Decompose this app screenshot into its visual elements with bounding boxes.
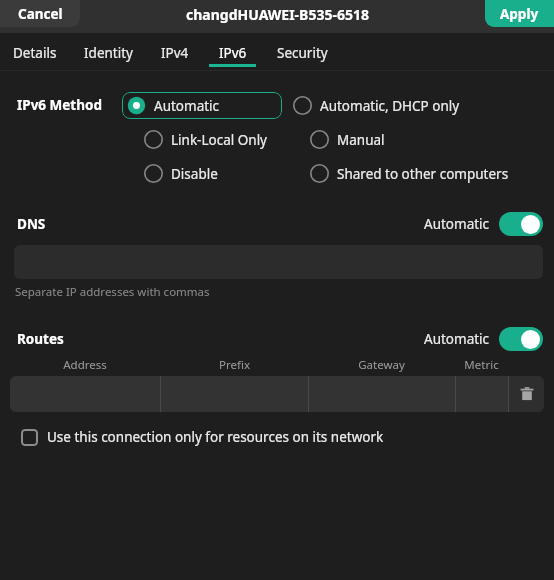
staticText: DNS [17, 215, 46, 233]
staticText: changdHUAWEI-B535-6518 [186, 5, 369, 24]
button[interactable]: Automatic [424, 327, 543, 351]
staticText: Metric [464, 357, 499, 373]
staticText: IPv6 Method [17, 96, 122, 114]
staticText: Manual [337, 131, 385, 149]
button[interactable]: Delete route [509, 376, 544, 412]
button[interactable]: Link-Local Only [139, 126, 299, 153]
button[interactable]: Automatic toggle, on [499, 212, 543, 236]
staticText: IPv6 [219, 44, 247, 62]
staticText: Apply [500, 5, 539, 23]
staticText: Cancel [18, 5, 63, 23]
staticText: Automatic [424, 330, 490, 348]
button[interactable]: Automatic toggle, on [499, 327, 543, 351]
staticText: Link-Local Only [171, 131, 267, 149]
button[interactable]: Manual [310, 126, 385, 153]
button[interactable]: Automatic [122, 92, 282, 119]
button[interactable]: Apply [485, 0, 554, 27]
button[interactable]: Automatic, DHCP only [293, 92, 460, 119]
button[interactable]: IPv4 [153, 33, 197, 71]
staticText: Security [277, 44, 328, 62]
staticText: Identity [84, 44, 133, 62]
button[interactable]: IPv6 [209, 33, 256, 71]
button[interactable]: Security [268, 33, 336, 71]
staticText: Automatic, DHCP only [320, 97, 460, 115]
staticText: Use this connection only for resources o… [47, 428, 384, 446]
staticText: Automatic [154, 97, 220, 115]
button[interactable]: Automatic [424, 212, 543, 236]
button[interactable]: Shared to other computers [310, 160, 509, 187]
staticText: Prefix [219, 357, 250, 373]
button[interactable]: Disable [139, 160, 299, 187]
staticText: Routes [17, 330, 64, 348]
button[interactable]: Details [6, 33, 64, 71]
staticText: Gateway [358, 357, 405, 373]
staticText: IPv4 [161, 44, 189, 62]
staticText: Address [63, 357, 107, 373]
staticText: Separate IP addresses with commas [15, 284, 210, 300]
staticText: Disable [171, 165, 218, 183]
staticText: Automatic [424, 215, 490, 233]
button[interactable]: Use this connection only for resources o… [0, 424, 554, 450]
staticText: Details [13, 44, 57, 62]
button[interactable]: Identity [75, 33, 141, 71]
button[interactable]: Cancel [0, 0, 80, 27]
staticText: Shared to other computers [337, 165, 509, 183]
